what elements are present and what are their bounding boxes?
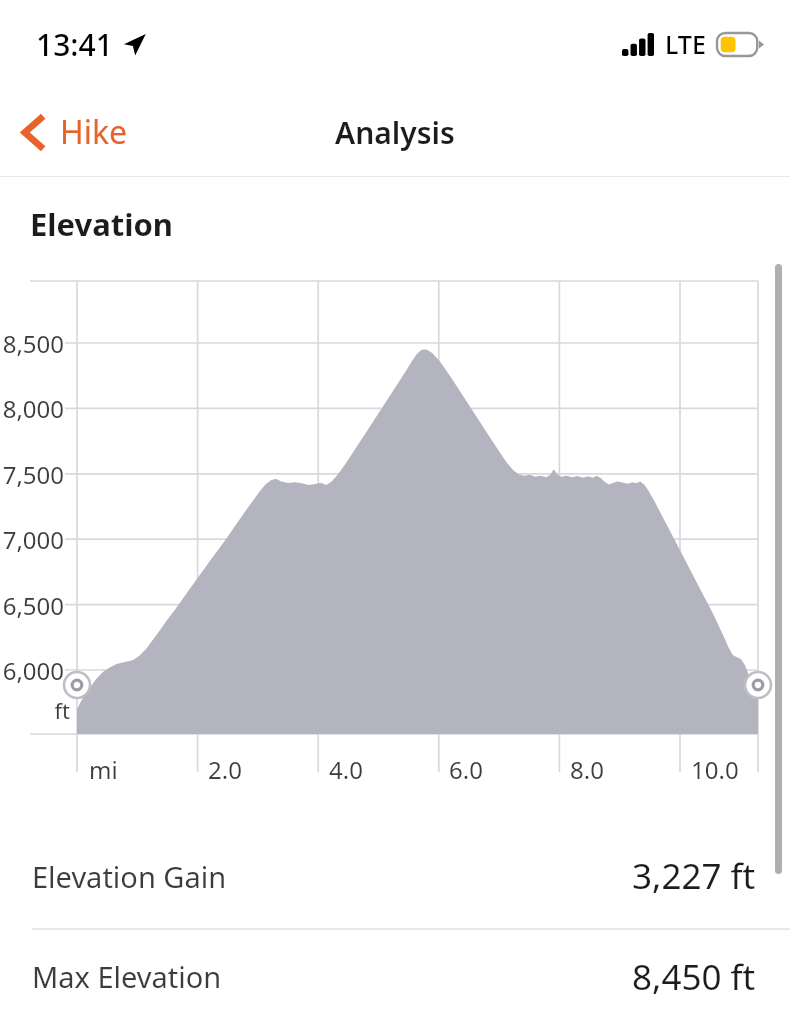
staticText: Elevation Gain	[32, 857, 227, 896]
staticText: LTE	[665, 27, 706, 61]
button[interactable]: Back	[0, 100, 144, 164]
button[interactable]: Max Elevation	[0, 930, 790, 1023]
staticText: 13:41	[36, 24, 113, 65]
staticText: 6,500	[0, 589, 64, 622]
staticText: 7,000	[0, 523, 64, 556]
staticText: 8,450 ft	[632, 953, 756, 1001]
staticText: 7,500	[0, 458, 64, 491]
staticText: 3,227 ft	[632, 852, 756, 900]
button[interactable]: Elevation Gain	[0, 824, 790, 928]
staticText: 8.0	[570, 753, 604, 786]
staticText: 2.0	[208, 753, 242, 786]
staticText: 6,000	[0, 654, 64, 687]
staticText: 8,000	[0, 392, 64, 425]
staticText: Analysis	[335, 112, 455, 153]
staticText: Elevation	[30, 203, 174, 245]
staticText: 6.0	[449, 753, 483, 786]
staticText: 10.0	[691, 753, 739, 786]
staticText: Hike	[60, 110, 128, 154]
staticText: 4.0	[329, 753, 363, 786]
staticText: ft	[0, 695, 70, 725]
staticText: 8,500	[0, 327, 64, 360]
staticText: Max Elevation	[32, 957, 222, 996]
other: Back	[22, 114, 45, 151]
staticText: mi	[89, 753, 118, 786]
